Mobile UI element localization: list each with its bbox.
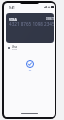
button[interactable]: Verified [26,60,34,68]
staticText: Visa [12,45,17,48]
staticText: ok [26,68,34,71]
staticText: 2345 [12,48,18,51]
staticText: DEBIT [46,17,54,21]
button[interactable]: VISA [6,13,54,43]
staticText: 4321 8765 1098 2345 [9,21,54,27]
staticText: 9:41 [9,6,15,10]
staticText: VISA [9,17,17,22]
button[interactable]: Visa [4,44,55,52]
